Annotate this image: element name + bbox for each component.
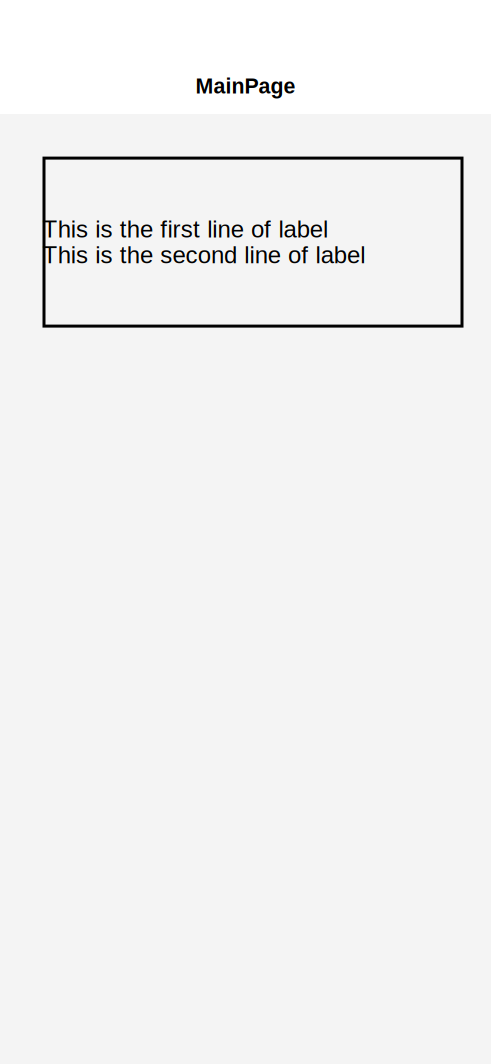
staticText: MainPage (195, 74, 295, 98)
staticText: This is the first line of label This is … (42, 216, 365, 268)
